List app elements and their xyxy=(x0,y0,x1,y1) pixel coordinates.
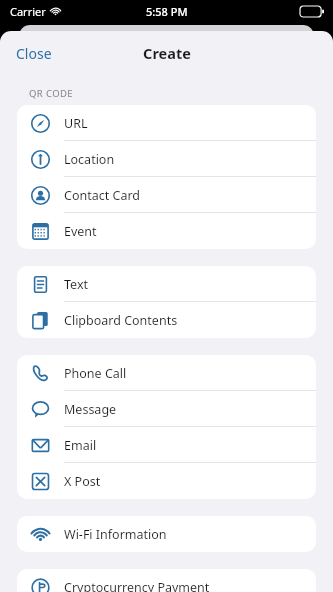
button[interactable]: Close xyxy=(0,36,68,71)
button[interactable]: URL xyxy=(17,105,316,141)
button[interactable]: Email xyxy=(17,427,316,463)
staticText: Contact Card xyxy=(64,187,140,204)
button[interactable]: Phone Call xyxy=(17,355,316,391)
button[interactable]: Contact Card xyxy=(17,177,316,213)
button[interactable]: Clipboard Contents xyxy=(17,302,316,338)
button[interactable]: Cryptocurrency Payment xyxy=(17,569,316,592)
button[interactable]: Message xyxy=(17,391,316,427)
staticText: URL xyxy=(64,115,88,132)
staticText: Create xyxy=(143,43,191,63)
staticText: Carrier xyxy=(10,4,46,19)
staticText: Clipboard Contents xyxy=(64,312,178,329)
button[interactable]: Text xyxy=(17,266,316,302)
staticText: Wi-Fi Information xyxy=(64,526,167,543)
staticText: Message xyxy=(64,401,117,418)
button[interactable]: Wi-Fi Information xyxy=(17,516,316,552)
button[interactable]: Event xyxy=(17,213,316,249)
staticText: Close xyxy=(16,44,52,63)
staticText: Text xyxy=(64,276,89,293)
staticText: 5:58 PM xyxy=(146,4,188,19)
staticText: Location xyxy=(64,151,115,168)
staticText: Cryptocurrency Payment xyxy=(64,579,210,592)
staticText: Event xyxy=(64,223,97,240)
button[interactable]: Location xyxy=(17,141,316,177)
staticText: Email xyxy=(64,437,97,454)
staticText: X Post xyxy=(64,473,101,490)
staticText: Phone Call xyxy=(64,365,127,382)
staticText: QR CODE xyxy=(29,87,74,100)
button[interactable]: X Post xyxy=(17,463,316,499)
